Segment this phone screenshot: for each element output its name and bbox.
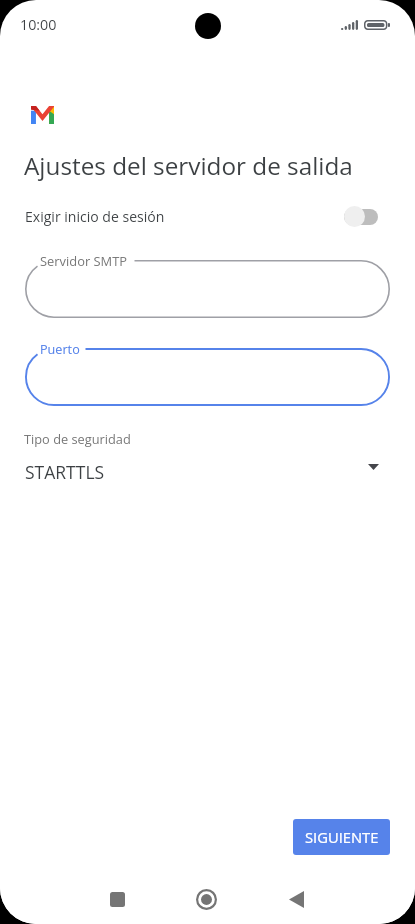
staticText: SIGUIENTE (305, 827, 379, 847)
button[interactable]: Exigir inicio de sesión (0, 197, 415, 235)
staticText: 10:00 (20, 15, 57, 34)
staticText: STARTTLS (25, 460, 105, 484)
staticText: Servidor SMTP (40, 252, 128, 270)
button[interactable]: SIGUIENTE (293, 819, 390, 855)
staticText: Puerto (40, 340, 80, 357)
staticText: Tipo de seguridad (24, 430, 131, 447)
staticText: Exigir inicio de sesión (25, 207, 165, 226)
button[interactable]: Servidor SMTP (25, 260, 390, 318)
button[interactable]: Home (184, 877, 228, 921)
staticText: Ajustes del servidor de salida (24, 149, 353, 182)
button[interactable]: Back (274, 877, 318, 921)
button[interactable]: Puerto (25, 348, 390, 406)
button[interactable]: Recent apps (95, 877, 139, 921)
button[interactable]: STARTTLS (0, 458, 415, 486)
